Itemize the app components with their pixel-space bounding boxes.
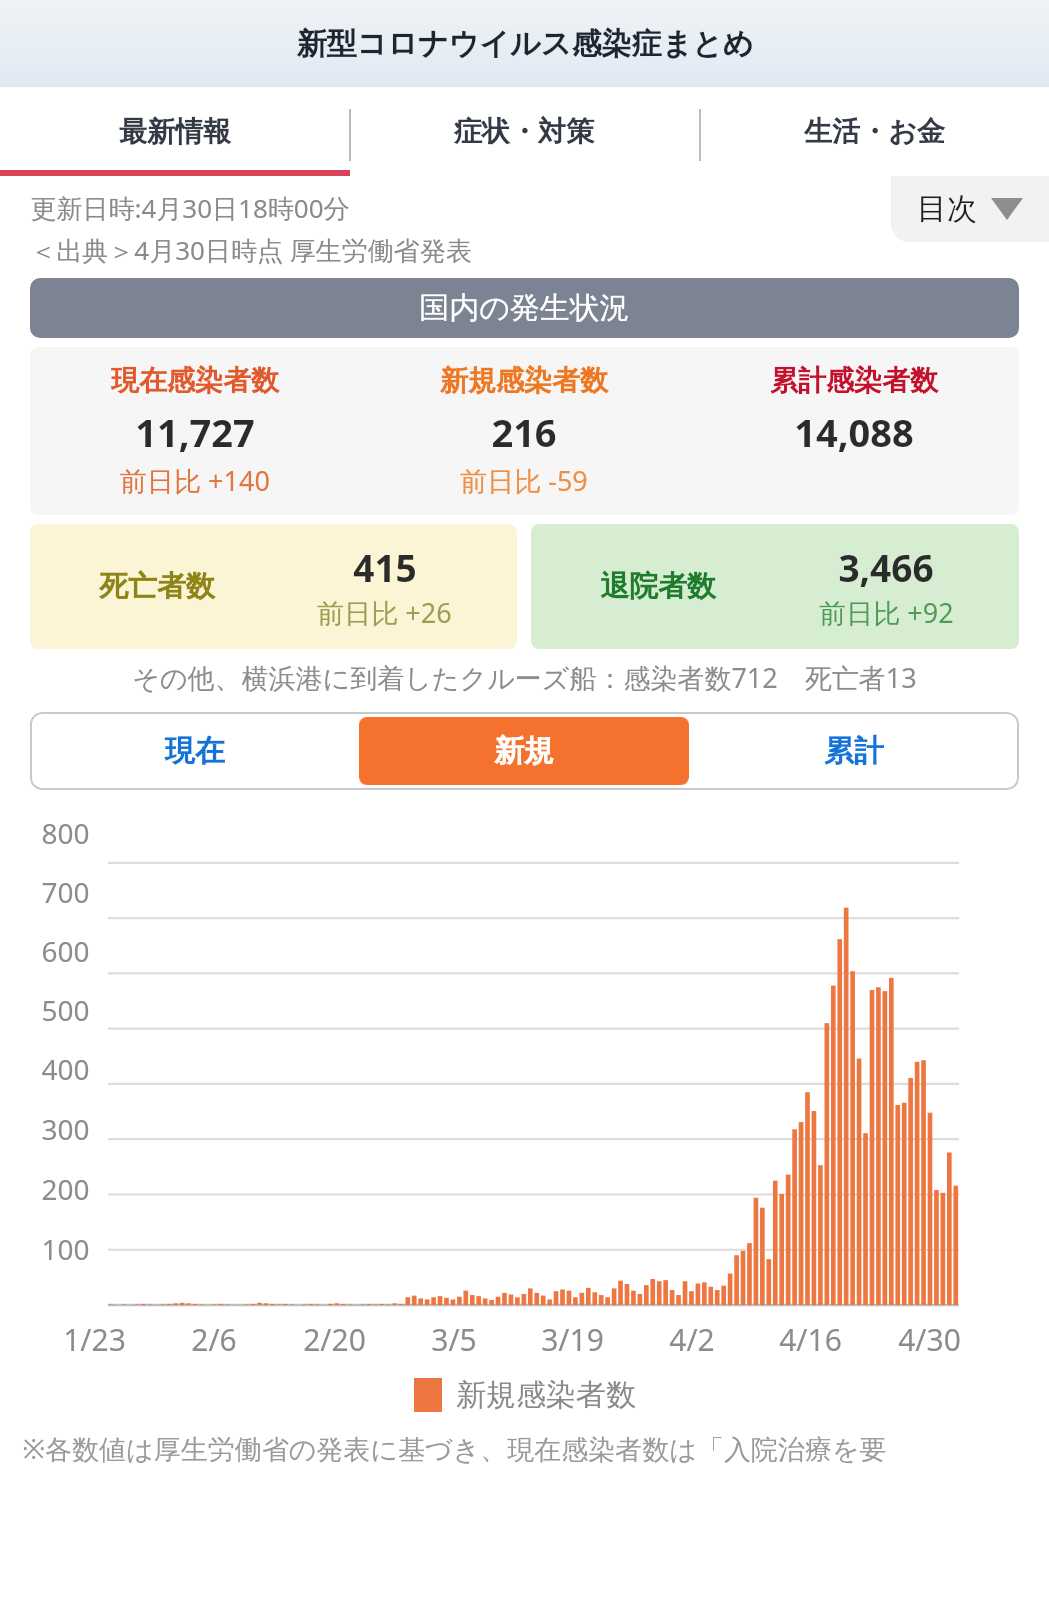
staticText: 現在 xyxy=(165,732,225,770)
staticText: 3,466 xyxy=(838,542,934,592)
staticText: 累計 xyxy=(824,732,884,770)
staticText: 症状・対策 xyxy=(454,114,594,149)
staticText: 300 xyxy=(41,1110,90,1148)
staticText: 11,727 xyxy=(135,406,255,458)
staticText: 新規感染者数 xyxy=(440,363,608,398)
staticText: ＜出典＞4月30日時点 厚生労働省発表 xyxy=(30,232,472,268)
staticText: 2/6 xyxy=(191,1319,237,1360)
staticText: 前日比 +92 xyxy=(819,594,954,631)
staticText: 退院者数 xyxy=(600,568,716,605)
button[interactable]: 現在 xyxy=(30,712,359,790)
staticText: ※各数値は厚生労働省の発表に基づき、現在感染者数は「入院治療を要 xyxy=(22,1430,887,1467)
staticText: 現在感染者数 xyxy=(111,363,279,398)
staticText: 3/19 xyxy=(541,1319,604,1360)
staticText: 死亡者数 xyxy=(99,568,215,605)
staticText: 14,088 xyxy=(794,406,914,458)
staticText: 800 xyxy=(41,814,90,852)
staticText: 100 xyxy=(41,1230,90,1268)
button[interactable]: 生活・お金 xyxy=(699,87,1049,176)
staticText: 更新日時:4月30日18時00分 xyxy=(30,190,350,226)
staticText: 4/30 xyxy=(898,1319,961,1360)
staticText: 新規感染者数 xyxy=(456,1376,636,1414)
staticText: 生活・お金 xyxy=(804,114,945,149)
staticText: 前日比 -59 xyxy=(460,462,588,499)
staticText: 700 xyxy=(41,873,90,911)
staticText: 400 xyxy=(41,1050,90,1088)
staticText: 目次 xyxy=(917,190,977,228)
staticText: 415 xyxy=(353,542,417,592)
staticText: 216 xyxy=(491,406,557,458)
staticText: 4/2 xyxy=(669,1319,715,1360)
staticText: 国内の発生状況 xyxy=(419,289,630,327)
button[interactable]: 累計 xyxy=(689,712,1019,790)
button[interactable]: 症状・対策 xyxy=(349,87,699,176)
staticText: 前日比 +26 xyxy=(317,594,452,631)
button[interactable]: 新規 xyxy=(359,717,689,785)
staticText: 新規 xyxy=(494,732,554,770)
staticText: 新型コロナウイルス感染症まとめ xyxy=(296,25,754,63)
staticText: 500 xyxy=(41,991,90,1029)
staticText: 3/5 xyxy=(431,1319,477,1360)
staticText: 2/20 xyxy=(303,1319,366,1360)
staticText: 4/16 xyxy=(779,1319,842,1360)
button[interactable]: 目次 xyxy=(891,176,1049,242)
staticText: 累計感染者数 xyxy=(770,363,938,398)
staticText: 前日比 +140 xyxy=(120,462,270,499)
staticText: 600 xyxy=(41,932,90,970)
button[interactable]: 最新情報 xyxy=(0,87,349,176)
staticText: その他、横浜港に到着したクルーズ船：感染者数712 死亡者13 xyxy=(132,659,917,696)
staticText: 最新情報 xyxy=(119,114,231,149)
staticText: 200 xyxy=(41,1170,90,1208)
staticText: 1/23 xyxy=(63,1319,126,1360)
